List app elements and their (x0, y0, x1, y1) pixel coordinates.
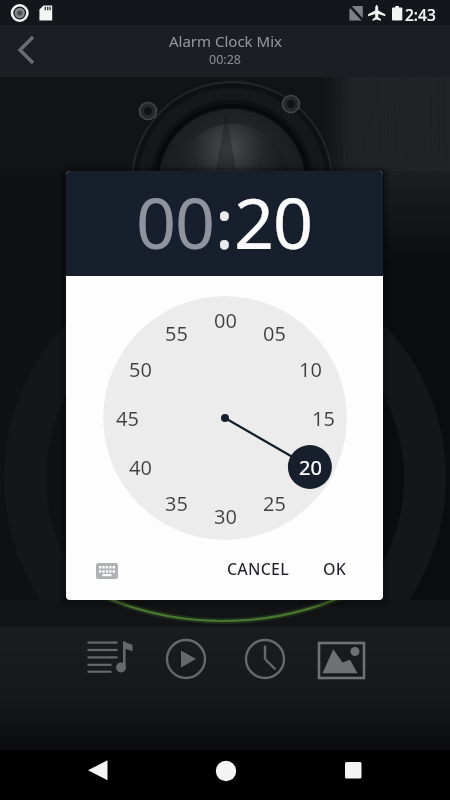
staticText: CANCEL (227, 558, 289, 580)
staticText: 30 (214, 503, 237, 530)
button[interactable] (84, 636, 136, 682)
staticText: 35 (165, 490, 188, 517)
staticText: 00:28 (209, 51, 241, 68)
button[interactable]: OK (307, 549, 363, 589)
staticText: 40 (129, 454, 152, 481)
button[interactable] (78, 750, 122, 800)
staticText: 55 (165, 320, 188, 347)
staticText: : (215, 174, 234, 269)
button[interactable] (331, 750, 375, 800)
staticText: 45 (116, 405, 139, 432)
button[interactable] (315, 638, 369, 684)
staticText: 15 (312, 405, 335, 432)
staticText: 20 (234, 174, 313, 269)
button[interactable]: CANCEL (213, 549, 303, 589)
staticText: 05 (263, 320, 286, 347)
button[interactable] (6, 31, 46, 71)
staticText: 25 (263, 490, 286, 517)
staticText: OK (323, 558, 347, 580)
button[interactable] (165, 638, 207, 680)
button[interactable]: 00 (103, 296, 347, 540)
staticText: 20 (299, 454, 322, 481)
staticText: 00 (136, 174, 215, 269)
staticText: 00 (214, 307, 237, 334)
button[interactable] (203, 750, 247, 800)
staticText: 50 (129, 356, 152, 383)
button[interactable] (244, 638, 286, 680)
staticText: 10 (299, 356, 322, 383)
staticText: Alarm Clock Mix (169, 31, 282, 51)
button[interactable] (87, 551, 127, 591)
staticText: 2:43 (405, 4, 436, 25)
